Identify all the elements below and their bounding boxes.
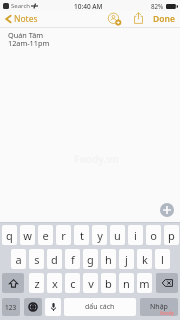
button[interactable]: z [29,273,44,293]
staticText: Done [153,13,175,25]
button[interactable]: p [164,225,179,245]
staticText: r [61,228,66,243]
button[interactable]: e [38,225,53,245]
button[interactable]: n [119,273,134,293]
button[interactable]: 123 [2,298,20,316]
button[interactable]: Notes [5,11,38,27]
staticText: p [168,228,175,243]
button[interactable]: Share [133,12,144,24]
button[interactable]: g [83,249,98,269]
staticText: x [52,276,58,291]
staticText: y [97,228,103,243]
staticText: Nhập [150,302,168,312]
staticText: m [139,276,150,291]
staticText: v [88,276,94,291]
button[interactable]: Backspace [156,273,178,293]
button[interactable]: m [137,273,152,293]
button[interactable]: i [128,225,143,245]
staticText: 12am-11pm [8,38,50,48]
staticText: b [105,276,112,291]
button[interactable]: Nhập [140,298,178,316]
staticText: k [142,252,148,267]
button[interactable]: v [83,273,98,293]
button[interactable]: u [110,225,125,245]
button[interactable]: Done [152,12,176,26]
staticText: Search [11,2,30,10]
staticText: q [6,228,13,243]
button[interactable]: d [47,249,62,269]
staticText: a [15,252,22,267]
button[interactable]: Shift [2,273,24,293]
button[interactable]: Language [24,298,42,316]
button[interactable]: y [92,225,107,245]
staticText: Notes [14,13,38,25]
staticText: j [125,252,128,267]
staticText: n [123,276,130,291]
button[interactable]: s [29,249,44,269]
button[interactable]: k [137,249,152,269]
button[interactable]: l [155,249,170,269]
button[interactable]: f [65,249,80,269]
staticText: 82% [151,2,164,10]
staticText: z [34,276,40,291]
staticText: dấu cách [85,302,115,312]
button[interactable]: h [101,249,116,269]
button[interactable]: o [146,225,161,245]
button[interactable]: a [11,249,26,269]
staticText: l [161,252,164,267]
button[interactable]: Dictate [45,298,61,316]
staticText: s [34,252,40,267]
staticText: Quán Tâm [8,30,44,40]
staticText: d [51,252,58,267]
button[interactable]: t [74,225,89,245]
button[interactable]: b [101,273,116,293]
staticText: f [71,252,75,267]
staticText: e [42,228,49,243]
button[interactable]: r [56,225,71,245]
staticText: h [105,252,112,267]
staticText: c [70,276,76,291]
staticText: g [87,252,94,267]
staticText: u [114,228,121,243]
staticText: 10:40 AM [74,2,103,11]
button[interactable]: w [20,225,35,245]
button[interactable]: q [2,225,17,245]
button[interactable]: j [119,249,134,269]
staticText: w [23,228,32,243]
button[interactable]: dấu cách [64,298,136,316]
button[interactable]: c [65,273,80,293]
staticText: 123 [5,303,17,312]
button[interactable]: Add [160,203,174,217]
staticText: o [150,228,157,243]
staticText: i [134,228,137,243]
staticText: foody [160,310,175,317]
staticText: t [80,228,84,243]
button[interactable]: x [47,273,62,293]
button[interactable]: Collaborate [108,13,121,25]
